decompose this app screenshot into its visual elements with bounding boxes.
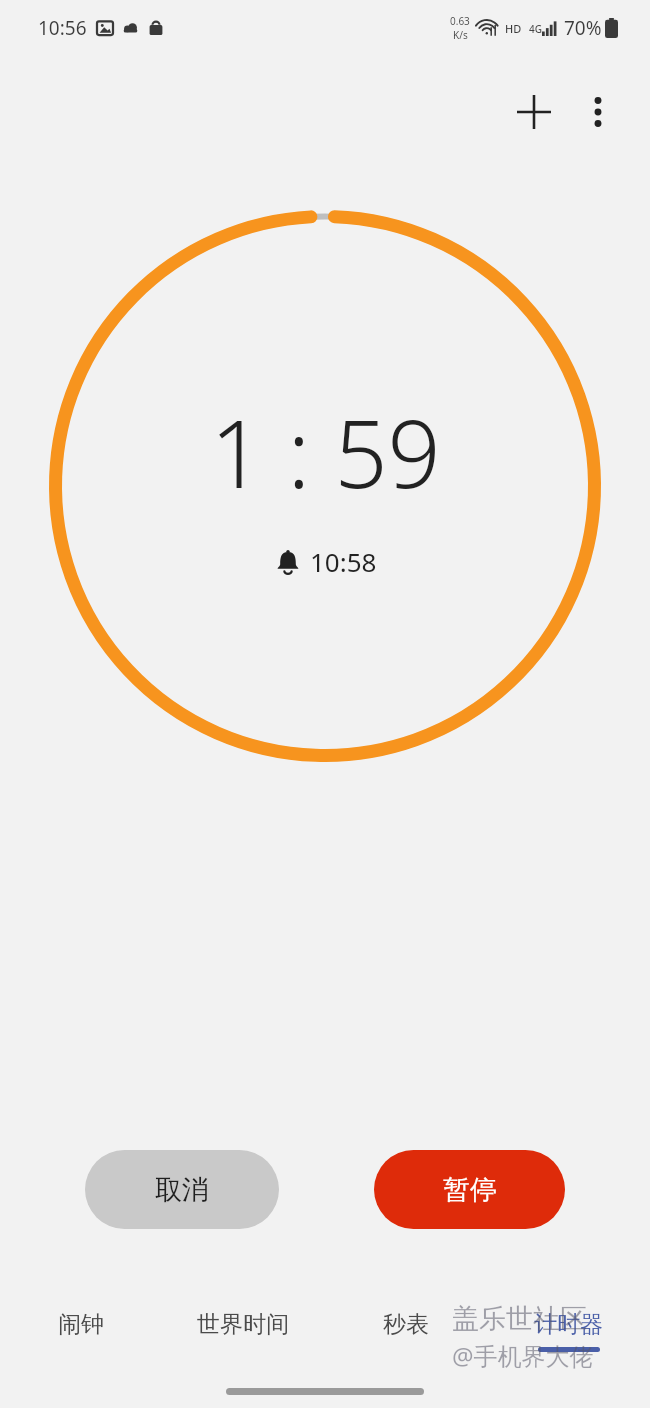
staticText: 暂停 bbox=[443, 1173, 497, 1207]
staticText: K/s bbox=[453, 28, 468, 42]
staticText: 10:58 bbox=[310, 544, 377, 579]
staticText: 4G bbox=[529, 22, 542, 36]
button[interactable]: 秒表 bbox=[324, 1310, 487, 1372]
staticText: 1 : 59 bbox=[210, 389, 441, 516]
button[interactable]: 闹钟 bbox=[0, 1310, 162, 1372]
button[interactable]: 计时器 bbox=[487, 1310, 650, 1372]
button[interactable]: Add timer bbox=[500, 78, 568, 146]
staticText: 盖乐世社区 bbox=[452, 1302, 587, 1336]
staticText: @手机界大佬 bbox=[452, 1339, 594, 1372]
button[interactable]: 暂停 bbox=[374, 1150, 565, 1229]
button[interactable]: More options bbox=[568, 82, 628, 142]
staticText: 世界时间 bbox=[197, 1310, 289, 1339]
staticText: 70% bbox=[564, 15, 602, 41]
staticText: 秒表 bbox=[383, 1310, 429, 1339]
staticText: 计时器 bbox=[534, 1310, 603, 1339]
button[interactable]: 取消 bbox=[85, 1150, 279, 1229]
button[interactable]: 世界时间 bbox=[162, 1310, 324, 1372]
staticText: 10:56 bbox=[38, 15, 87, 41]
staticText: HD bbox=[505, 21, 522, 36]
staticText: 闹钟 bbox=[58, 1310, 104, 1339]
staticText: 0.63 bbox=[450, 14, 470, 28]
staticText: 取消 bbox=[155, 1173, 209, 1207]
